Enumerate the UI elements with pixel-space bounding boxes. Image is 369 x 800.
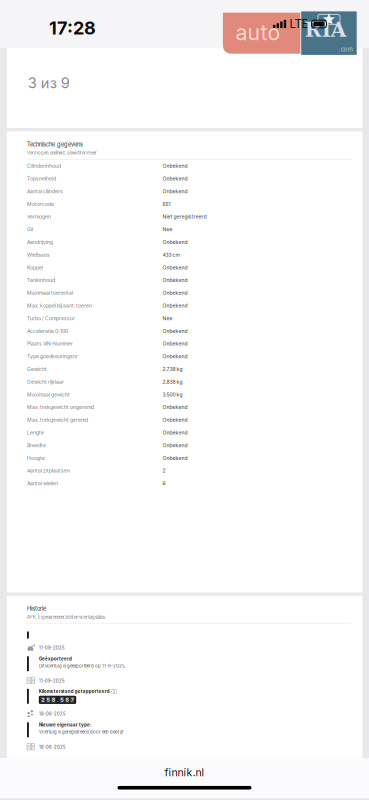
- staticText: 6: [65, 697, 68, 703]
- staticText: 651: [162, 201, 170, 207]
- staticText: 6: [162, 480, 165, 486]
- staticText: Vermogen: [27, 214, 51, 220]
- button[interactable]: 3 из 9: [7, 48, 362, 128]
- staticText: Gewicht: [27, 366, 47, 372]
- staticText: 433 cm: [162, 252, 179, 258]
- staticText: 2: [41, 697, 44, 703]
- staticText: Vermogen, snelheid, gewicht en meer: [27, 150, 97, 155]
- staticText: Breedte: [27, 442, 46, 448]
- staticText: Onbekend: [162, 442, 187, 448]
- staticText: 18-06-2025: [39, 745, 66, 750]
- staticText: Tankinhoud: [27, 277, 55, 283]
- staticText: Onbekend: [162, 455, 187, 461]
- staticText: Aantal cilinders: [27, 188, 63, 194]
- staticText: Onbekend: [162, 277, 187, 283]
- staticText: Maximaal toerental: [27, 290, 73, 296]
- staticText: Onbekend: [162, 303, 187, 309]
- staticText: Niet geregistreerd: [162, 214, 206, 220]
- staticText: Nieuwe eigenaar type:: [39, 722, 91, 728]
- staticText: 3 из 9: [28, 74, 70, 92]
- staticText: Onbekend: [162, 417, 187, 423]
- staticText: .com: [339, 46, 353, 53]
- staticText: Onbekend: [162, 404, 187, 410]
- staticText: Onbekend: [162, 264, 187, 271]
- staticText: Nee: [162, 226, 172, 232]
- staticText: Onbekend: [162, 328, 187, 334]
- staticText: Kilometerstand gerapporteerd: [39, 689, 110, 694]
- staticText: Onbekend: [162, 353, 187, 359]
- staticText: Max. trekgewicht geremd: [27, 417, 88, 423]
- staticText: 11-09-2025: [39, 678, 65, 683]
- staticText: Onbekend: [162, 176, 187, 182]
- staticText: RIA: [305, 18, 347, 41]
- staticText: Onbekend: [162, 430, 187, 436]
- staticText: Onbekend: [162, 188, 187, 194]
- staticText: Aandrijving: [27, 239, 53, 245]
- staticText: 3.500 kg: [162, 391, 182, 398]
- staticText: Onbekend: [162, 239, 187, 245]
- staticText: 11-09-2025: [39, 646, 65, 651]
- staticText: Cilinderinhoud: [27, 163, 61, 169]
- staticText: Nee: [162, 315, 172, 321]
- staticText: auto: [235, 19, 280, 45]
- staticText: Motorcode: [27, 201, 54, 207]
- staticText: 2.838 kg: [162, 379, 182, 385]
- staticText: finnik.nl: [164, 766, 204, 779]
- staticText: 2: [162, 468, 165, 474]
- staticText: Max. trekgewicht ongeremd: [27, 404, 94, 410]
- staticText: Gil: [27, 226, 33, 232]
- staticText: Hoogte: [27, 455, 45, 461]
- staticText: 7: [71, 697, 74, 703]
- staticText: 5: [60, 697, 63, 703]
- staticText: Technische gegevens: [27, 141, 83, 148]
- staticText: 17:28: [49, 17, 96, 39]
- staticText: 5: [46, 697, 49, 703]
- staticText: 2.738 kg: [162, 366, 182, 372]
- staticText: Type goedkeuringsnr: [27, 353, 78, 359]
- staticText: Aantal wielen: [27, 480, 58, 486]
- staticText: Maximaal gewicht: [27, 391, 70, 398]
- staticText: Onbekend: [162, 341, 187, 347]
- staticText: Acceleratie 0-100: [27, 328, 68, 334]
- staticText: Max. koppel bij aant. toeren: [27, 303, 92, 309]
- staticText: Historie: [27, 605, 46, 612]
- button[interactable]: finnik.nl: [0, 758, 369, 786]
- staticText: Voertuig is geregistreerd door een bedri…: [39, 729, 124, 735]
- staticText: Wielbasis: [27, 252, 50, 258]
- staticText: Topsnelheid: [27, 176, 56, 182]
- staticText: 18-06-2025: [39, 711, 66, 716]
- staticText: Onbekend: [162, 163, 187, 169]
- staticText: .: [56, 697, 58, 703]
- staticText: Gewicht rijklaar: [27, 379, 64, 385]
- staticText: Lengte: [27, 430, 44, 436]
- staticText: Dit voertuig is geëxporteerd op 11-9-202…: [39, 663, 125, 669]
- staticText: Onbekend: [162, 290, 187, 296]
- staticText: Aantal zitplaatsen: [27, 468, 70, 474]
- staticText: APK, Eigenarenoverzicht en voertuigstatu…: [27, 615, 105, 620]
- staticText: Geëxporteerd: [39, 656, 72, 662]
- staticText: 8: [52, 697, 55, 703]
- staticText: LTE: [289, 17, 308, 31]
- staticText: Koppel: [27, 264, 43, 271]
- staticText: Plaats VIN-Nummer: [27, 341, 73, 347]
- staticText: Turbo / Compressor: [27, 315, 75, 321]
